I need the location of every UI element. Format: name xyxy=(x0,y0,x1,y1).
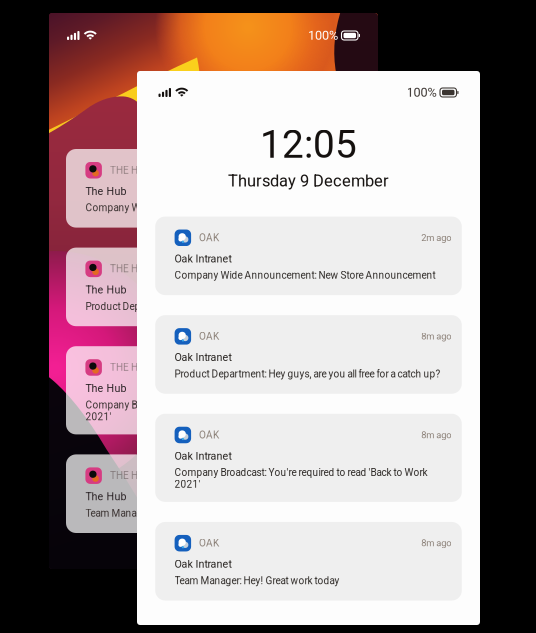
staticText: OAK xyxy=(199,232,219,244)
staticText: 8m ago xyxy=(421,331,451,342)
staticText: OAK xyxy=(199,537,219,549)
staticText: Company Broadcast: You're required to re… xyxy=(175,467,428,490)
staticText: THE HUB xyxy=(110,263,150,275)
staticText: Team Manager: Hey! Great work today xyxy=(85,507,250,519)
button[interactable]: THE HUB xyxy=(66,346,361,434)
staticText: Team Manager: Hey! Great work today xyxy=(175,575,340,587)
staticText: The Hub xyxy=(85,382,126,395)
button[interactable]: OAK xyxy=(155,414,462,502)
staticText: Product Department: Hey guys, are you al… xyxy=(175,368,441,380)
staticText: 8m ago xyxy=(421,429,451,440)
button[interactable]: OAK xyxy=(155,315,462,394)
staticText: 100% xyxy=(308,28,338,43)
staticText: OAK xyxy=(199,429,219,441)
staticText: Oak Intranet xyxy=(175,450,232,462)
staticText: Oak Intranet xyxy=(175,351,232,364)
staticText: 100% xyxy=(406,85,436,100)
button[interactable]: THE HUB xyxy=(66,149,361,228)
staticText: THE HUB xyxy=(110,362,150,373)
staticText: 12:05 xyxy=(260,122,357,167)
staticText: Company Wide Announcement: New xyxy=(85,202,249,214)
staticText: OAK xyxy=(199,330,219,342)
button[interactable]: THE HUB xyxy=(66,454,361,533)
staticText: The Hub xyxy=(85,185,126,197)
staticText: The Hub xyxy=(85,284,126,296)
staticText: Thursday 9 December xyxy=(228,171,389,190)
button[interactable]: OAK xyxy=(155,522,462,600)
staticText: Product Department: Hey guys, are you xyxy=(85,301,256,312)
staticText: Oak Intranet xyxy=(175,558,232,570)
staticText: 8m ago xyxy=(421,538,451,549)
staticText: Company Broadcast: You're required to re… xyxy=(85,399,338,423)
button[interactable]: THE HUB xyxy=(66,248,361,326)
staticText: 2m ago xyxy=(421,232,451,243)
staticText: Oak Intranet xyxy=(175,252,232,265)
button[interactable]: OAK xyxy=(155,216,462,295)
staticText: THE HUB xyxy=(110,470,150,481)
staticText: The Hub xyxy=(85,490,126,503)
staticText: THE HUB xyxy=(110,164,150,176)
staticText: Company Wide Announcement: New Store Ann… xyxy=(175,269,436,281)
